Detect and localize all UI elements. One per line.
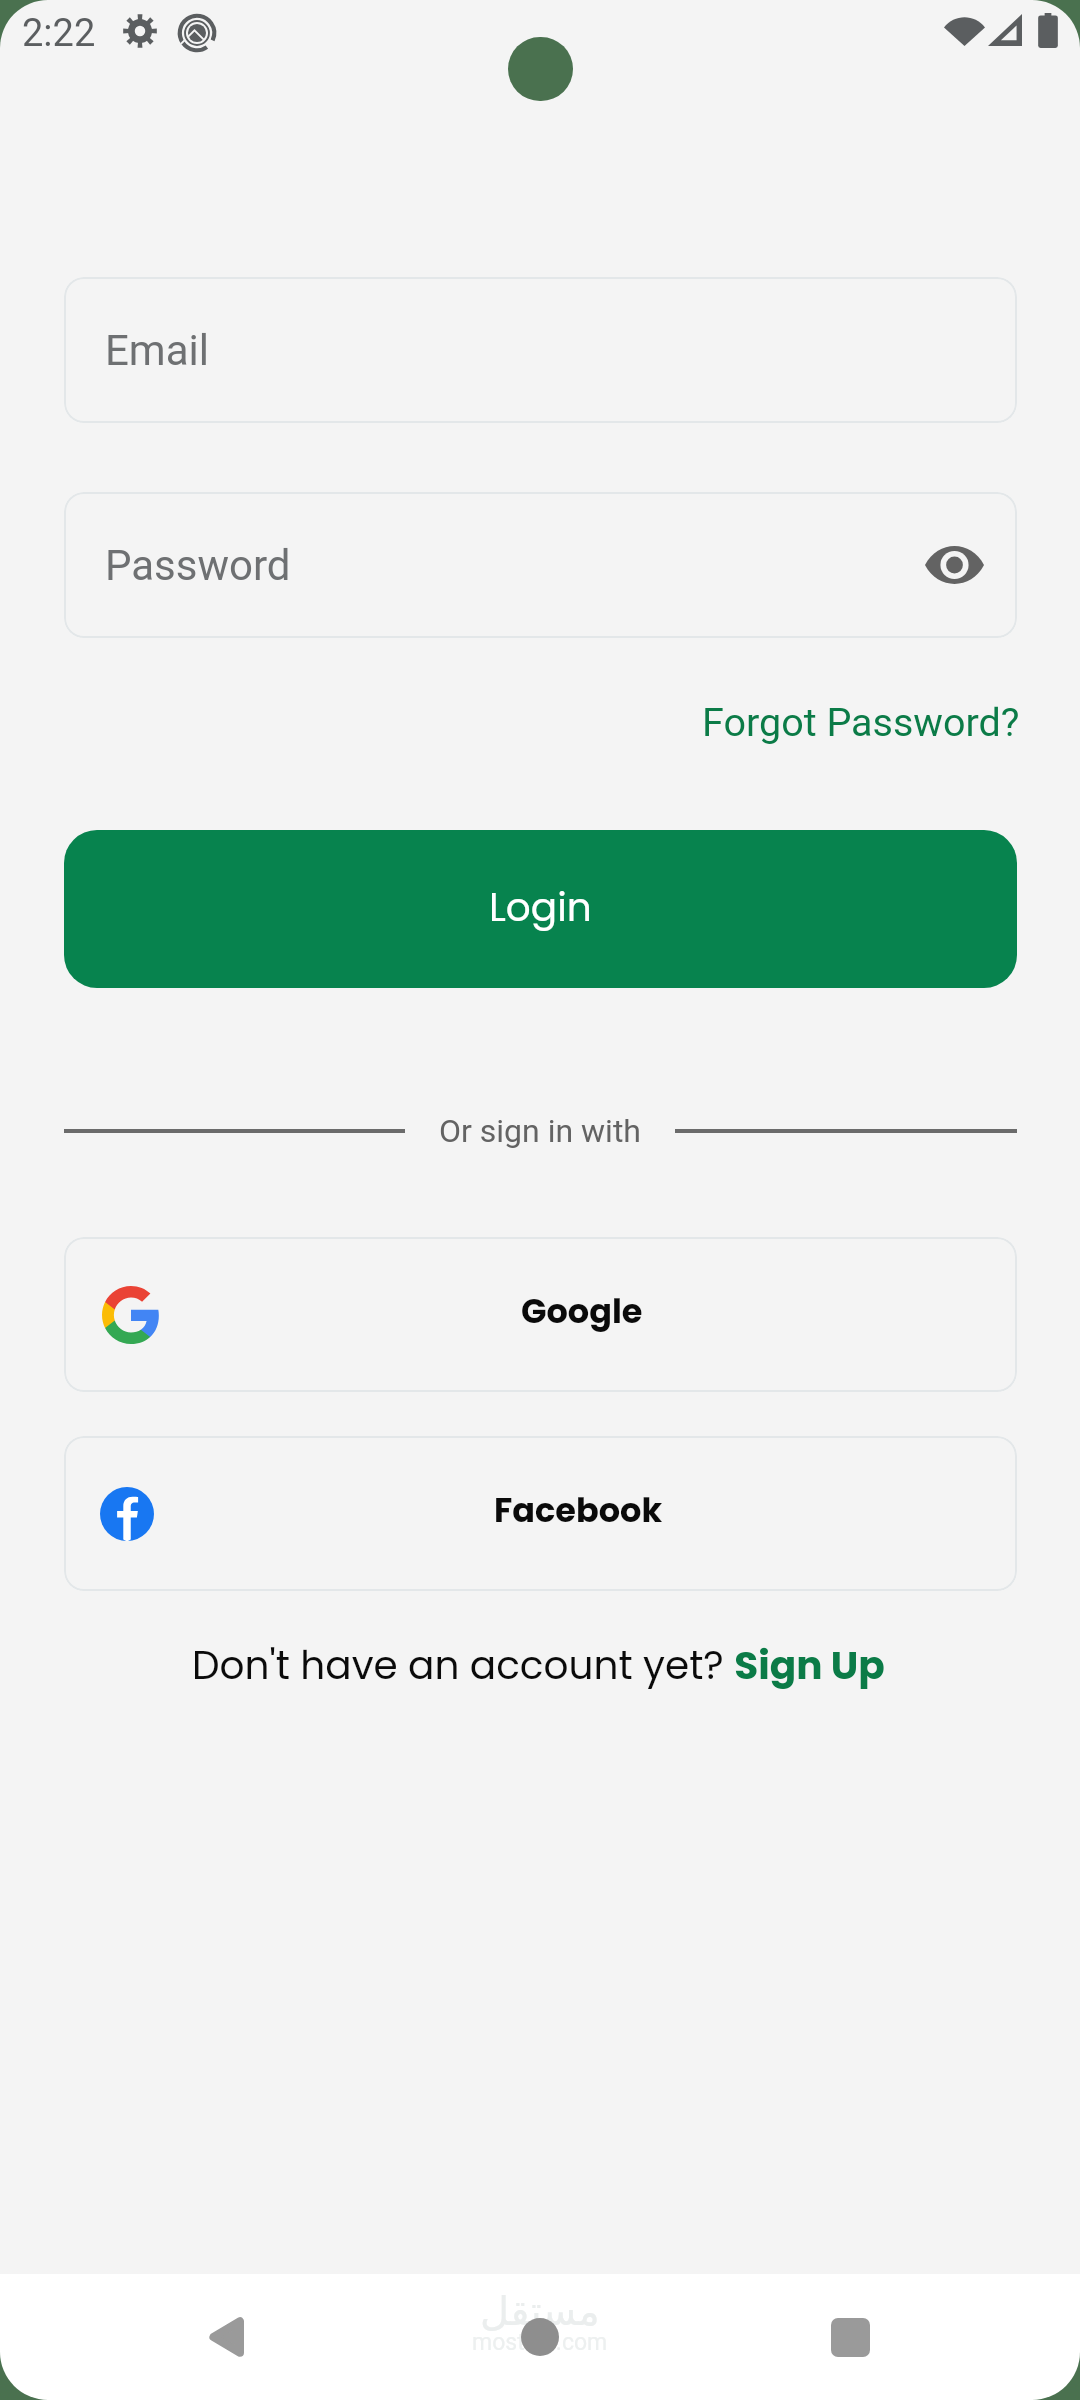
staticText: مستقل [480,2288,600,2335]
button[interactable]: Login [64,830,1017,988]
staticText: Google [521,1288,643,1335]
button[interactable]: Toggle password visibility [906,517,1002,613]
staticText: Email [105,326,209,375]
button[interactable]: Forgot Password? [698,691,1024,753]
button[interactable]: Home [480,2277,600,2397]
button[interactable]: Don't have an account yet? Sign Up [184,1628,893,1703]
button[interactable]: Recent apps [790,2277,910,2397]
button[interactable]: Email [64,277,1017,423]
staticText: 2:22 [22,11,96,56]
staticText: Login [489,880,592,935]
staticText: Don't have an account yet? Sign Up [192,1638,885,1693]
button[interactable]: Password [64,492,1017,638]
button[interactable]: Facebook [64,1436,1017,1591]
staticText: Facebook [494,1487,663,1534]
staticText: Or sign in with [439,1112,641,1150]
staticText: mostaql.com [472,2329,608,2356]
staticText: Forgot Password? [702,699,1020,745]
staticText: Password [105,541,291,590]
button[interactable]: Back [165,2277,285,2397]
button[interactable]: Google [64,1237,1017,1392]
